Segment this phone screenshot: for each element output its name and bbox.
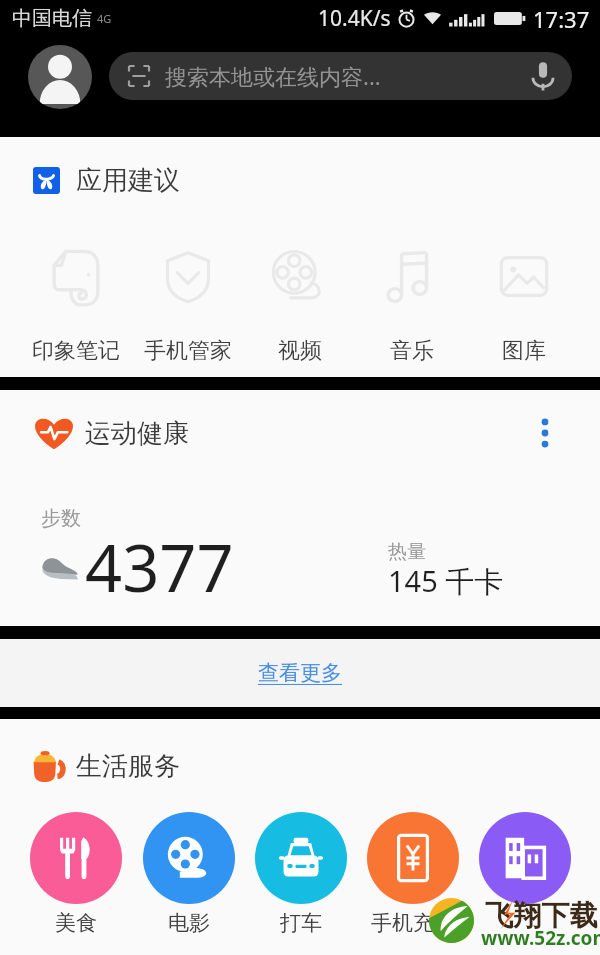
staticText: 手机充值	[371, 910, 455, 936]
button[interactable]: 印象笔记	[20, 241, 132, 365]
staticText: 10.4K/s	[318, 4, 391, 33]
other: Scan	[127, 64, 151, 88]
staticText: 视频	[278, 337, 322, 365]
staticText: 音乐	[390, 337, 434, 365]
staticText: 图库	[502, 337, 546, 365]
staticText: 4377	[85, 523, 234, 612]
button[interactable]: 手机管家	[132, 241, 244, 365]
button[interactable]: Scan	[109, 52, 572, 100]
button[interactable]: More options	[528, 416, 562, 450]
staticText: 电影	[168, 910, 210, 936]
button[interactable]: 生活服务	[31, 750, 180, 782]
staticText: 飞翔下载	[485, 898, 598, 933]
button[interactable]: Profile	[28, 45, 92, 109]
staticText: 美食	[55, 910, 97, 936]
staticText: 热量	[388, 540, 426, 564]
staticText: 4G	[97, 11, 112, 26]
staticText: 应用建议	[76, 164, 180, 197]
staticText: www.52z.com	[481, 925, 600, 951]
staticText: 查看更多	[258, 660, 342, 686]
staticText: 生活服务	[76, 750, 180, 782]
button[interactable]: 图库	[468, 241, 580, 365]
other: Voice search	[526, 59, 560, 93]
button[interactable]: 查看更多	[0, 639, 600, 707]
staticText: 印象笔记	[32, 337, 120, 365]
staticText: 搜索本地或在线内容...	[165, 61, 381, 91]
button[interactable]: 电影	[132, 812, 245, 936]
button[interactable]: 视频	[244, 241, 356, 365]
staticText: 145 千卡	[388, 561, 504, 601]
staticText: 打车	[280, 910, 322, 936]
staticText: 中国电信	[12, 6, 92, 31]
staticText: 运动健康	[85, 417, 189, 450]
staticText: 17:37	[533, 4, 590, 34]
button[interactable]: 手机充值	[357, 812, 469, 936]
button[interactable]: 美食	[19, 812, 132, 936]
button[interactable]	[469, 812, 581, 939]
button[interactable]: 打车	[245, 812, 357, 936]
staticText: 手机管家	[144, 337, 232, 365]
button[interactable]: 应用建议	[33, 163, 180, 197]
button[interactable]: 音乐	[356, 241, 468, 365]
staticText: 步数	[41, 506, 81, 531]
